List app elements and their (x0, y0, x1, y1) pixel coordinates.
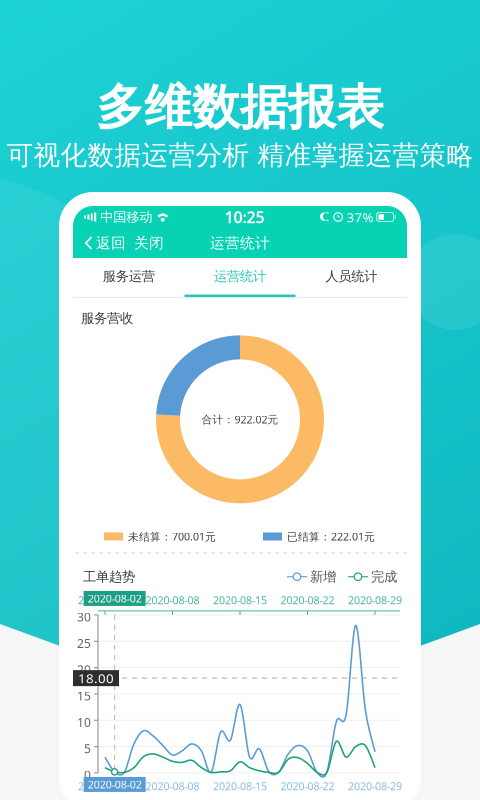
staticText: 返回 (96, 234, 126, 252)
staticText: 25 (77, 635, 91, 651)
staticText: 工单趋势 (83, 568, 135, 585)
staticText: 2020-08-08 (145, 779, 199, 793)
staticText: 18.00 (78, 669, 114, 687)
button[interactable]: 运营统计 (184, 258, 296, 297)
staticText: 完成 (371, 568, 397, 585)
staticText: 37% (347, 208, 374, 226)
staticText: 0 (84, 767, 91, 783)
staticText: 新增 (310, 568, 336, 585)
staticText: 10:25 (224, 206, 264, 228)
staticText: 2020-08-08 (145, 593, 199, 607)
staticText: 2020-08-29 (348, 779, 402, 793)
staticText: 2020-08-01 (78, 593, 132, 607)
staticText: 15 (77, 688, 91, 704)
staticText: 运营统计 (214, 268, 266, 284)
staticText: 关闭 (134, 234, 164, 252)
staticText: 2020-08-01 (78, 779, 132, 793)
staticText: 2020-08-02 (88, 591, 142, 605)
button[interactable]: 服务运营 (73, 258, 184, 297)
staticText: 未结算：700.01元 (128, 529, 216, 544)
staticText: 30 (77, 609, 91, 625)
staticText: 2020-08-15 (213, 779, 267, 793)
staticText: 已结算：222.01元 (287, 529, 375, 544)
staticText: 中国移动 (100, 209, 152, 225)
staticText: 运营统计 (210, 234, 270, 252)
button[interactable]: 返回 (84, 229, 126, 257)
button[interactable]: 人员统计 (296, 258, 407, 297)
staticText: 人员统计 (325, 268, 377, 284)
staticText: 20 (77, 662, 91, 677)
staticText: 服务营收 (81, 310, 133, 326)
staticText: 2020-08-15 (213, 593, 267, 607)
staticText: 5 (84, 741, 91, 756)
staticText: 多维数据报表 (96, 78, 384, 137)
staticText: 2020-08-29 (348, 593, 402, 607)
staticText: 2020-08-22 (280, 593, 334, 607)
staticText: 可视化数据运营分析 精准掌握运营策略 (6, 139, 473, 172)
staticText: 10 (77, 714, 91, 730)
staticText: 服务运营 (103, 268, 155, 284)
button[interactable]: 关闭 (126, 229, 164, 257)
staticText: 2020-08-02 (88, 777, 142, 791)
staticText: 合计：922.02元 (201, 412, 278, 426)
staticText: 2020-08-22 (280, 779, 334, 793)
